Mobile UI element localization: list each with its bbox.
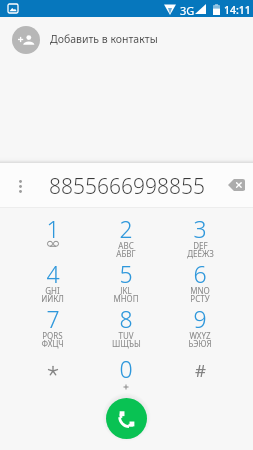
staticText: ИЙКЛ bbox=[41, 293, 64, 304]
staticText: 5 bbox=[119, 258, 133, 289]
button[interactable]: 8 bbox=[89, 299, 163, 344]
button[interactable]: 3 bbox=[163, 209, 237, 254]
button[interactable]: 0 bbox=[89, 344, 163, 396]
staticText: DEF bbox=[193, 240, 208, 251]
button[interactable]: 4 bbox=[16, 254, 89, 299]
staticText: РСТУ bbox=[190, 293, 210, 304]
staticText: ДЕЁЖЗ bbox=[187, 248, 214, 259]
button[interactable]: Backspace bbox=[223, 172, 249, 198]
staticText: 7 bbox=[46, 303, 60, 334]
staticText: PQRS bbox=[42, 330, 63, 341]
staticText: 6 bbox=[193, 258, 207, 289]
staticText: ABC bbox=[118, 240, 134, 251]
button[interactable]: 9 bbox=[163, 299, 237, 344]
staticText: 3G bbox=[180, 3, 195, 18]
staticText: 0 bbox=[119, 353, 133, 384]
button[interactable]: 1 bbox=[16, 209, 89, 254]
button[interactable]: # bbox=[163, 344, 237, 396]
staticText: 1 bbox=[46, 213, 60, 244]
staticText: TUV bbox=[118, 330, 134, 341]
staticText: 8855666998855 bbox=[49, 172, 205, 201]
button[interactable]: 7 bbox=[16, 299, 89, 344]
staticText: Добавить в контакты bbox=[50, 32, 158, 46]
staticText: 14:11 bbox=[224, 3, 251, 17]
button[interactable]: Добавить в контакты bbox=[0, 17, 253, 62]
staticText: 3 bbox=[193, 213, 207, 244]
staticText: # bbox=[195, 359, 206, 382]
staticText: ЬЭЮЯ bbox=[188, 338, 212, 349]
staticText: 8 bbox=[119, 303, 133, 334]
staticText: 9 bbox=[193, 303, 207, 334]
staticText: МНОП bbox=[113, 293, 139, 304]
staticText: JKL bbox=[120, 285, 132, 296]
staticText: АБВГ bbox=[116, 248, 136, 259]
button[interactable]: Call bbox=[106, 398, 147, 439]
button[interactable] bbox=[16, 344, 89, 396]
staticText: MNO bbox=[190, 285, 210, 296]
button[interactable]: More options bbox=[6, 172, 34, 200]
staticText: ФХЦЧ bbox=[41, 338, 64, 349]
button[interactable]: 5 bbox=[89, 254, 163, 299]
staticText: 4 bbox=[46, 258, 60, 289]
staticText: ШЩЪЫ bbox=[112, 338, 141, 349]
staticText: GHI bbox=[45, 285, 60, 296]
button[interactable]: 2 bbox=[89, 209, 163, 254]
staticText: WXYZ bbox=[189, 330, 211, 341]
button[interactable]: 6 bbox=[163, 254, 237, 299]
staticText: 2 bbox=[119, 213, 133, 244]
